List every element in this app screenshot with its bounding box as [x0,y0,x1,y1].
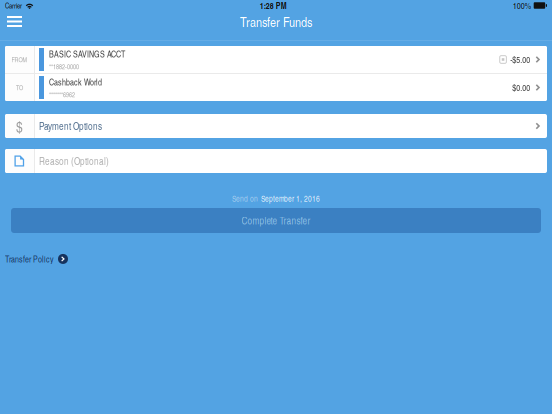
staticText: Transfer Policy [5,253,54,265]
button[interactable]: Reason (Optional) [5,149,547,173]
staticText: Cashback World [49,76,102,88]
staticText: -$5.00 [510,54,530,65]
button[interactable]: TO [5,74,547,101]
staticText: TO [16,83,23,92]
button[interactable]: Complete Transfer [11,208,541,233]
staticText: *******6962 [49,90,75,99]
staticText: Complete Transfer [241,214,310,227]
staticText: September 1, 2016 [261,193,320,204]
staticText: BASIC SAVINGS ACCT [49,48,125,60]
staticText: Reason (Optional) [39,154,109,168]
staticText: FROM [11,55,27,64]
staticText: **1882-0000 [49,62,79,71]
staticText: 1:28 PM [260,0,287,12]
staticText: Transfer Funds [240,12,312,31]
staticText: $ [16,116,23,136]
button[interactable]: Transfer Policy [5,253,68,265]
staticText: 100% [513,0,531,11]
button[interactable]: $ [5,114,547,138]
staticText: Carrier [5,0,22,11]
staticText: Payment Options [39,119,102,133]
button[interactable]: FROM [5,46,547,73]
staticText: $0.00 [512,82,530,93]
staticText: Send on [232,193,258,204]
button[interactable]: Menu [0,11,29,32]
